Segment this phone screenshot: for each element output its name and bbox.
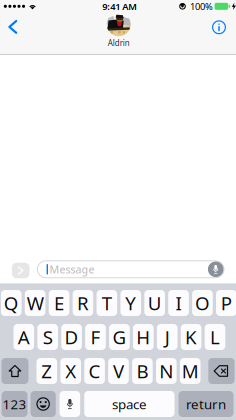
staticText: G <box>112 325 126 349</box>
button[interactable]: C <box>84 358 105 384</box>
button[interactable]: 123 <box>1 391 27 417</box>
staticText: J <box>165 325 170 349</box>
button[interactable]: Aldrin <box>107 12 131 48</box>
button[interactable]: O <box>192 290 213 316</box>
staticText: T <box>102 291 112 315</box>
button[interactable]: R <box>73 290 93 316</box>
staticText: Q <box>4 291 19 315</box>
staticText: X <box>65 359 76 383</box>
button[interactable]: Dictation <box>59 391 80 417</box>
staticText: M <box>182 359 199 383</box>
button[interactable]: K <box>181 324 201 350</box>
button[interactable]: M <box>180 358 200 384</box>
staticText: 100% <box>190 0 213 12</box>
button[interactable]: T <box>97 290 117 316</box>
button[interactable]: L <box>205 324 225 350</box>
button[interactable]: A <box>13 324 34 350</box>
staticText: Y <box>125 291 136 315</box>
staticText: N <box>159 359 173 383</box>
staticText: 9:41 AM <box>102 0 137 12</box>
staticText: return <box>186 395 226 413</box>
staticText: space <box>112 395 147 413</box>
staticText: L <box>210 325 220 349</box>
staticText: W <box>27 291 44 315</box>
button[interactable]: Y <box>120 290 141 316</box>
staticText: S <box>43 325 53 349</box>
button[interactable]: N <box>156 358 177 384</box>
button[interactable]: Z <box>36 358 57 384</box>
button[interactable]: Q <box>1 290 22 316</box>
button[interactable]: Details <box>207 12 230 42</box>
staticText: C <box>89 359 101 383</box>
button[interactable]: J <box>157 324 177 350</box>
button[interactable]: X <box>60 358 81 384</box>
button[interactable]: B <box>132 358 153 384</box>
button[interactable]: P <box>216 290 236 316</box>
staticText: F <box>90 325 100 349</box>
staticText: U <box>148 291 162 315</box>
staticText: O <box>195 291 210 315</box>
button[interactable]: I <box>168 290 189 316</box>
staticText: K <box>185 325 197 349</box>
button[interactable]: E <box>49 290 69 316</box>
button[interactable]: H <box>133 324 154 350</box>
staticText: E <box>54 291 64 315</box>
staticText: 123 <box>2 395 26 413</box>
staticText: H <box>136 325 150 349</box>
staticText: V <box>113 359 124 383</box>
staticText: B <box>136 359 148 383</box>
button[interactable]: D <box>61 324 82 350</box>
staticText: R <box>77 291 89 315</box>
button[interactable]: space <box>84 391 174 417</box>
button[interactable]: F <box>85 324 106 350</box>
button[interactable]: U <box>144 290 165 316</box>
staticText: A <box>18 325 30 349</box>
staticText: Z <box>41 359 52 383</box>
button[interactable]: V <box>108 358 129 384</box>
button[interactable]: Emoji <box>30 391 56 417</box>
staticText: I <box>176 291 182 315</box>
button[interactable]: Shift <box>1 358 28 384</box>
button[interactable]: S <box>37 324 58 350</box>
staticText: D <box>65 325 79 349</box>
button[interactable]: Back <box>1 12 24 42</box>
staticText: Message <box>50 262 95 276</box>
button[interactable]: G <box>109 324 130 350</box>
button[interactable]: W <box>25 290 45 316</box>
button[interactable]: Delete <box>208 358 235 384</box>
staticText: Aldrin <box>108 38 130 48</box>
button[interactable]: return <box>179 391 233 417</box>
staticText: P <box>221 291 232 315</box>
button[interactable]: Apps <box>12 261 29 277</box>
